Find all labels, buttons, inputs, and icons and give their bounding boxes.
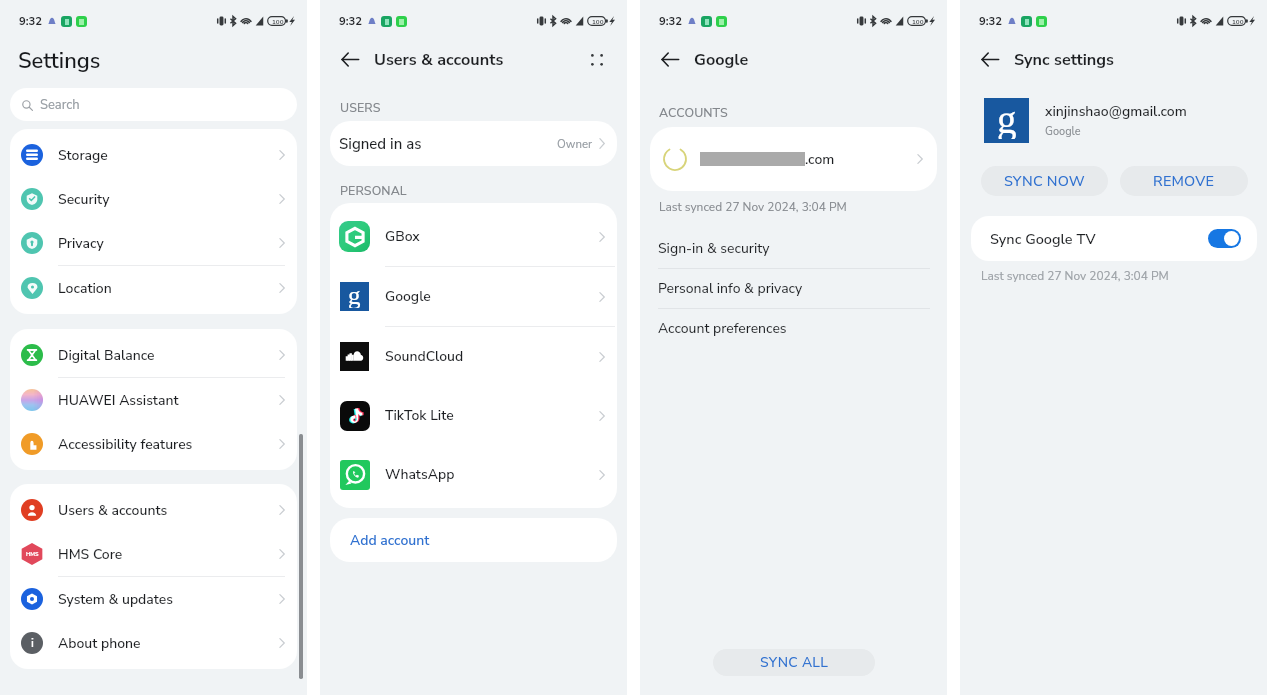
staticText: Settings (18, 46, 101, 76)
button[interactable]: Privacy (10, 221, 297, 266)
staticText: 100 (912, 17, 924, 26)
staticText: HMS Core (58, 545, 279, 564)
button[interactable]: Back (981, 47, 999, 71)
staticText: Location (58, 279, 279, 298)
button[interactable]: Personal info & privacy (640, 269, 947, 309)
staticText: Account preferences (658, 319, 787, 338)
staticText: .com (805, 150, 835, 169)
button[interactable]: HMS (10, 532, 297, 577)
button[interactable]: REMOVE (1120, 166, 1248, 196)
staticText: Users & accounts (374, 48, 587, 71)
button[interactable]: Security (10, 177, 297, 221)
staticText: TikTok Lite (385, 406, 599, 425)
staticText: 9:32 (339, 13, 363, 29)
button[interactable]: SYNC NOW (981, 166, 1108, 196)
staticText: USERS (340, 99, 381, 116)
button[interactable]: Account preferences (640, 309, 947, 348)
button[interactable]: Sync Google TV (971, 216, 1257, 261)
staticText: Search (40, 96, 80, 114)
button[interactable]: Back (341, 47, 359, 71)
staticText: Sync settings (1014, 48, 1247, 71)
staticText: Sign-in & security (658, 239, 770, 258)
staticText: System & updates (58, 590, 279, 609)
staticText: Security (58, 190, 279, 209)
staticText: i (31, 635, 34, 651)
staticText: xinjinshao@gmail.com (1045, 102, 1187, 121)
button[interactable]: Back (661, 47, 679, 71)
staticText: 100 (592, 17, 604, 26)
staticText: Last synced 27 Nov 2024, 3:04 PM (659, 199, 847, 215)
staticText: Accessibility features (58, 435, 279, 454)
button[interactable]: GBox (330, 207, 617, 267)
button[interactable]: i (10, 621, 297, 665)
button[interactable]: WhatsApp (330, 445, 617, 504)
button[interactable]: Sign-in & security (640, 229, 947, 269)
button[interactable]: TikTok Lite (330, 386, 617, 445)
staticText: 100 (272, 17, 284, 26)
staticText: SoundCloud (385, 347, 599, 366)
staticText: Privacy (58, 234, 279, 253)
staticText: Personal info & privacy (658, 279, 803, 298)
button[interactable]: System & updates (10, 577, 297, 621)
button[interactable]: Users & accounts (10, 488, 297, 532)
button[interactable]: SYNC ALL (713, 649, 875, 676)
staticText: SYNC ALL (760, 653, 829, 672)
staticText: 100 (1232, 17, 1244, 26)
staticText: GBox (385, 227, 599, 246)
button[interactable]: g (330, 267, 617, 327)
staticText: About phone (58, 634, 279, 653)
staticText: g (348, 282, 361, 308)
button[interactable]: .com (650, 127, 937, 191)
staticText: HUAWEI Assistant (58, 391, 279, 410)
staticText: g (997, 98, 1017, 139)
staticText: HMS (26, 550, 39, 558)
button[interactable]: More options (587, 49, 607, 69)
button[interactable]: Storage (10, 133, 297, 177)
staticText: Add account (350, 531, 430, 550)
staticText: 9:32 (659, 13, 683, 29)
staticText: Sync Google TV (990, 229, 1208, 249)
staticText: Last synced 27 Nov 2024, 3:04 PM (981, 268, 1169, 284)
button[interactable]: Location (10, 266, 297, 310)
staticText: ACCOUNTS (659, 104, 728, 121)
button[interactable]: Signed in as (330, 121, 617, 166)
button[interactable]: SoundCloud (330, 327, 617, 386)
staticText: REMOVE (1153, 171, 1215, 191)
staticText: Google (694, 48, 927, 71)
staticText: Users & accounts (58, 501, 279, 520)
staticText: WhatsApp (385, 465, 599, 484)
staticText: 9:32 (19, 13, 43, 29)
staticText: Signed in as (339, 134, 557, 154)
staticText: Owner (557, 136, 593, 152)
staticText: SYNC NOW (1004, 171, 1085, 191)
button[interactable]: Search (10, 88, 297, 121)
button[interactable]: HUAWEI Assistant (10, 378, 297, 422)
staticText: 9:32 (979, 13, 1003, 29)
button[interactable]: Digital Balance (10, 333, 297, 378)
button[interactable]: Add account (330, 518, 617, 562)
staticText: Digital Balance (58, 346, 279, 365)
staticText: Storage (58, 146, 279, 165)
staticText: Google (1045, 124, 1081, 139)
staticText: PERSONAL (340, 182, 407, 199)
staticText: Google (385, 287, 599, 306)
button[interactable]: Accessibility features (10, 422, 297, 466)
